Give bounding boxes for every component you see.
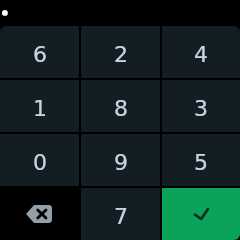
button[interactable]: 5: [162, 134, 240, 186]
button[interactable]: 3: [162, 80, 240, 132]
button[interactable]: 4: [162, 26, 240, 78]
button[interactable]: 6: [0, 26, 79, 78]
button[interactable]: Confirm: [162, 188, 240, 240]
button[interactable]: 7: [81, 188, 160, 240]
staticText: 9: [114, 150, 128, 176]
staticText: 2: [114, 42, 128, 68]
staticText: 0: [33, 150, 47, 176]
staticText: 7: [114, 204, 128, 230]
button[interactable]: 1: [0, 80, 79, 132]
staticText: 3: [194, 96, 208, 122]
button[interactable]: 8: [81, 80, 160, 132]
staticText: 6: [33, 42, 47, 68]
staticText: 1: [33, 96, 47, 122]
staticText: 8: [114, 96, 128, 122]
button[interactable]: 2: [81, 26, 160, 78]
button[interactable]: 9: [81, 134, 160, 186]
staticText: 5: [194, 150, 208, 176]
button[interactable]: Backspace: [0, 188, 79, 240]
button[interactable]: 0: [0, 134, 79, 186]
staticText: 4: [194, 42, 208, 68]
